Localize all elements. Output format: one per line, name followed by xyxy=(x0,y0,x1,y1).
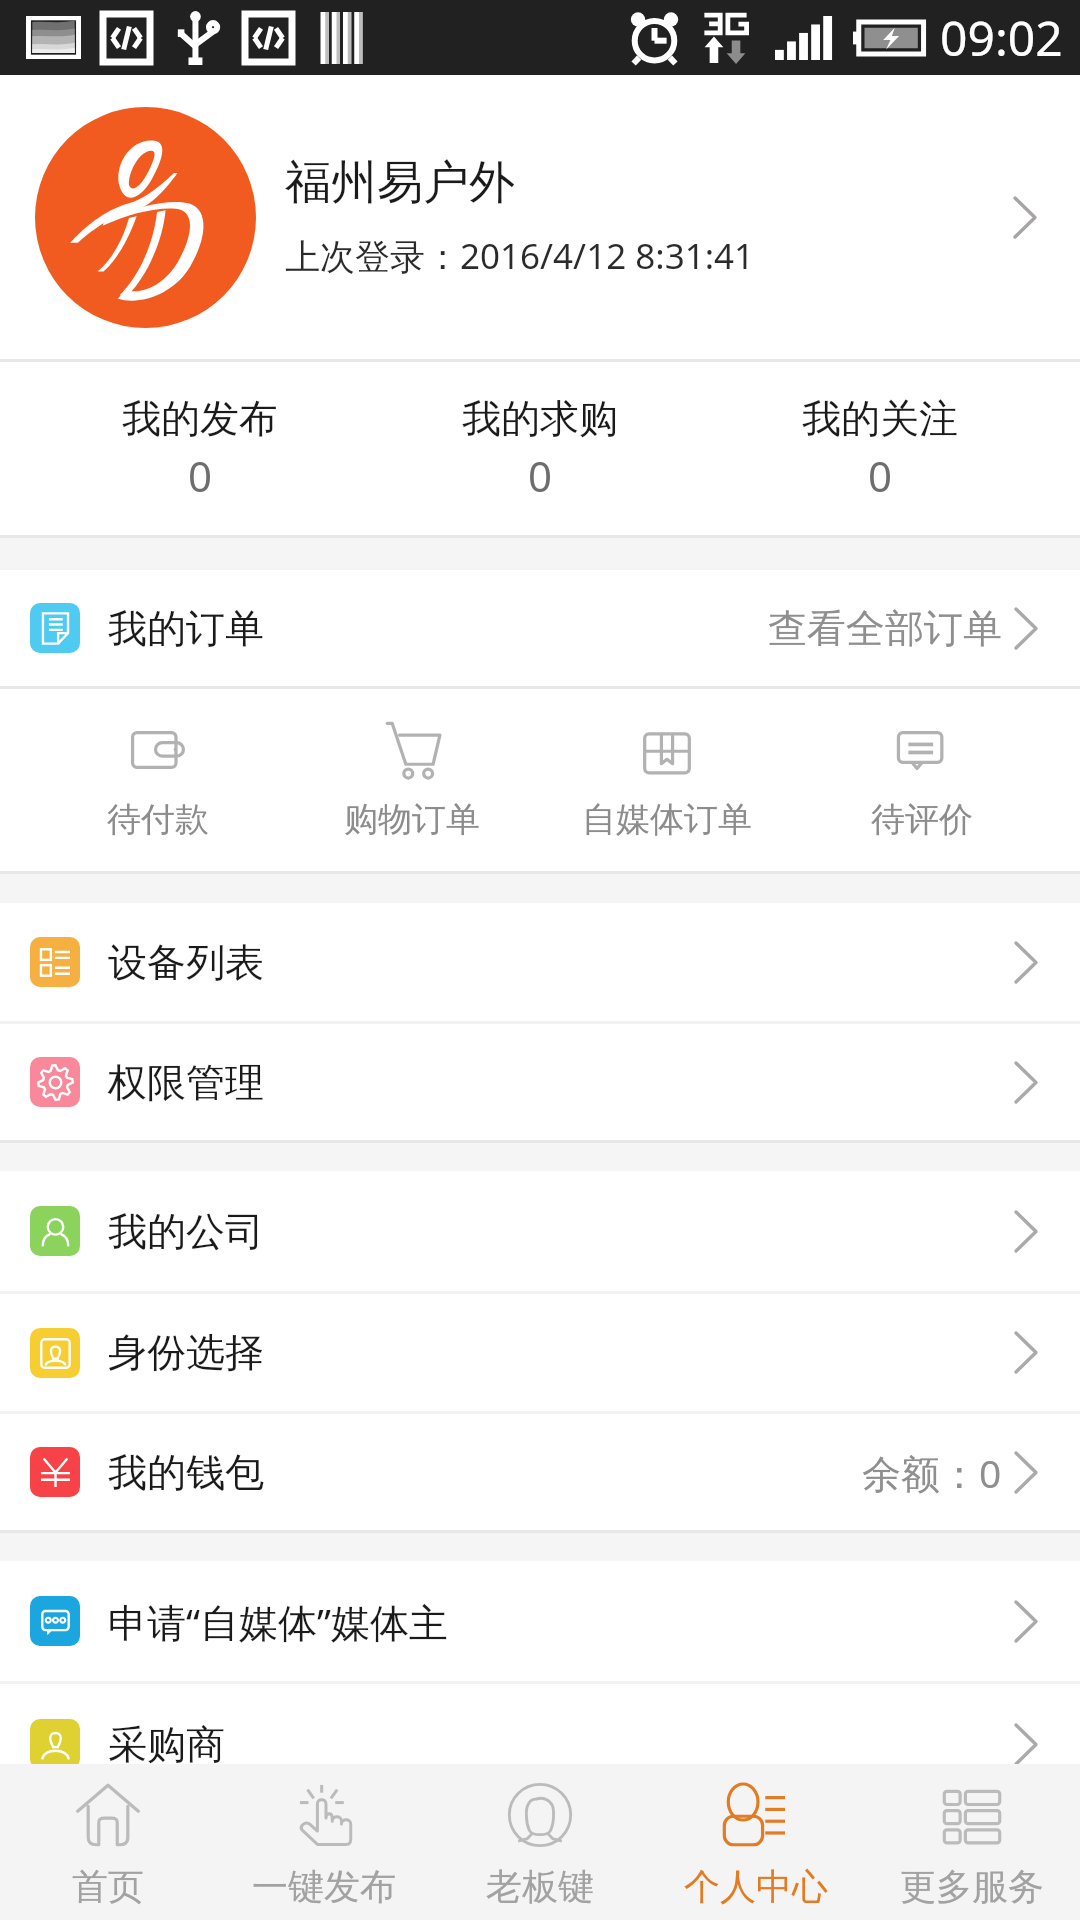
staticText: 待评价 xyxy=(871,798,973,841)
staticText: 采购商 xyxy=(108,1720,225,1769)
button[interactable]: 自媒体订单 xyxy=(539,689,794,871)
staticText: 权限管理 xyxy=(108,1058,264,1107)
staticText: 我的求购 xyxy=(462,394,618,443)
staticText: 身份选择 xyxy=(108,1328,264,1377)
staticText: 查看全部订单 xyxy=(768,604,1002,653)
staticText: 我的关注 xyxy=(802,394,958,443)
staticText: 首页 xyxy=(72,1864,144,1909)
staticText: 09:02 xyxy=(940,5,1063,70)
staticText: 个人中心 xyxy=(684,1864,828,1909)
staticText: 我的公司 xyxy=(108,1207,264,1256)
button[interactable]: 更多服务 xyxy=(864,1764,1080,1920)
staticText: 设备列表 xyxy=(108,938,264,987)
staticText: 一键发布 xyxy=(252,1864,396,1909)
button[interactable]: 设备列表 xyxy=(0,903,1080,1021)
other: 用户头像 xyxy=(35,107,256,328)
staticText: 更多服务 xyxy=(900,1864,1044,1909)
button[interactable]: 首页 xyxy=(0,1764,216,1920)
button[interactable]: 我的关注 xyxy=(710,362,1050,535)
button[interactable]: 申请“自媒体”媒体主 xyxy=(0,1561,1080,1681)
button[interactable]: 权限管理 xyxy=(0,1024,1080,1140)
button[interactable]: 待付款 xyxy=(31,689,285,871)
button[interactable]: 个人中心 xyxy=(648,1764,864,1920)
button[interactable]: 我的发布 xyxy=(30,362,370,535)
button[interactable]: 身份选择 xyxy=(0,1294,1080,1411)
button[interactable]: 用户头像 xyxy=(0,75,1080,359)
staticText: 申请“自媒体”媒体主 xyxy=(108,1595,449,1648)
button[interactable]: 我的订单 xyxy=(0,570,1080,686)
staticText: 自媒体订单 xyxy=(582,798,752,841)
button[interactable]: 我的公司 xyxy=(0,1171,1080,1291)
staticText: 福州易户外 xyxy=(285,154,515,212)
button[interactable]: 我的求购 xyxy=(370,362,710,535)
staticText: 0 xyxy=(528,447,553,504)
staticText: 0 xyxy=(188,447,213,504)
staticText: 上次登录：2016/4/12 8:31:41 xyxy=(285,232,755,280)
button[interactable]: 老板键 xyxy=(432,1764,648,1920)
button[interactable]: 购物订单 xyxy=(285,689,539,871)
staticText: 购物订单 xyxy=(344,798,480,841)
staticText: 待付款 xyxy=(107,798,209,841)
staticText: 我的钱包 xyxy=(108,1448,264,1497)
staticText: 我的发布 xyxy=(122,394,278,443)
button[interactable]: 我的钱包 xyxy=(0,1414,1080,1530)
staticText: 我的订单 xyxy=(108,604,264,653)
button[interactable]: 一键发布 xyxy=(216,1764,432,1920)
staticText: 0 xyxy=(868,447,893,504)
staticText: 老板键 xyxy=(486,1864,594,1909)
button[interactable]: 采购商 xyxy=(0,1684,1080,1804)
button[interactable]: 待评价 xyxy=(794,689,1049,871)
staticText: 余额：0 xyxy=(862,1446,1002,1499)
